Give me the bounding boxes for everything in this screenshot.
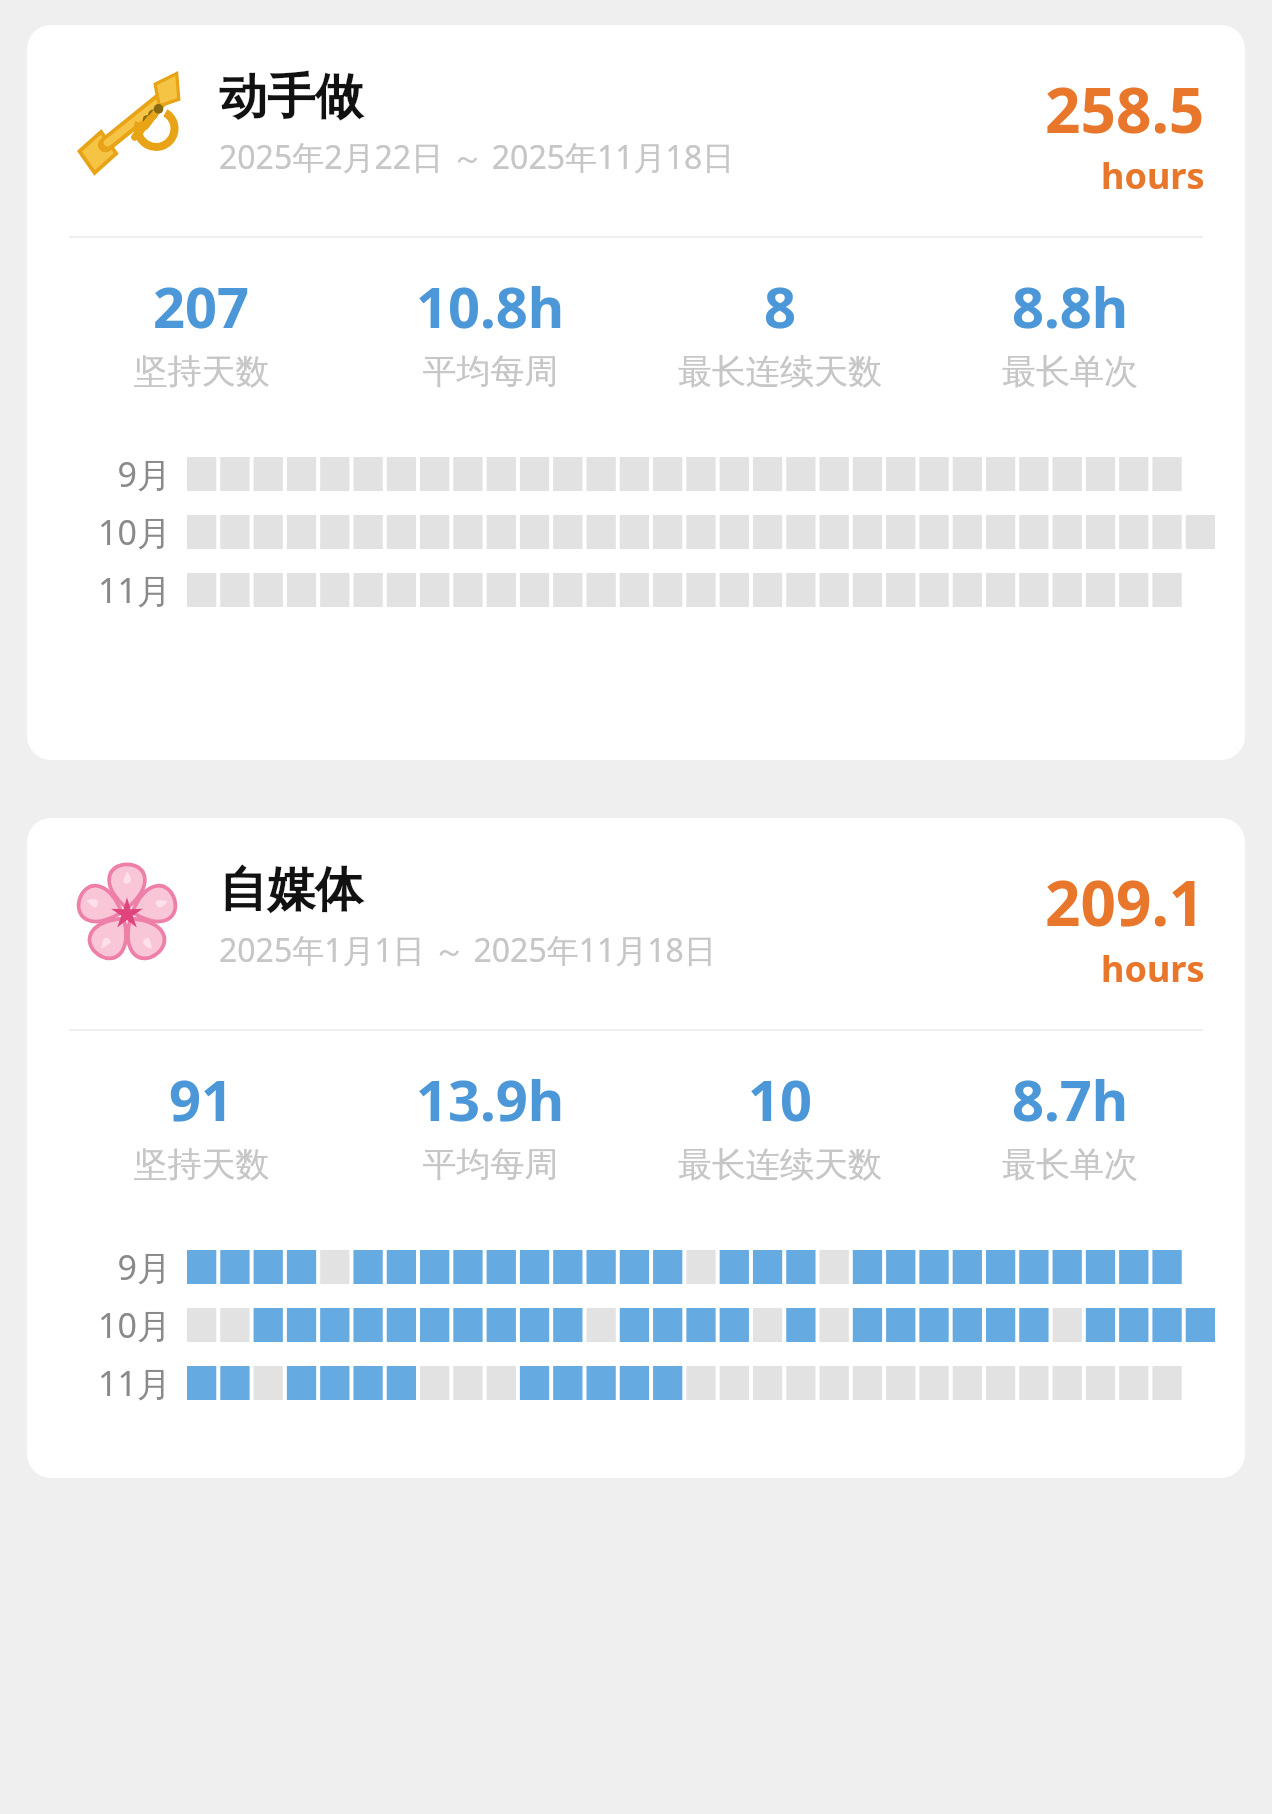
button[interactable]: 8.8h xyxy=(925,268,1215,393)
staticText: 2025年1月1日 ～ 2025年11月18日 xyxy=(219,928,716,972)
staticText: 9月 xyxy=(67,1244,171,1290)
staticText: 10 xyxy=(748,1061,813,1137)
button[interactable]: 8 xyxy=(635,268,925,393)
staticText: 11月 xyxy=(67,567,171,613)
staticText: 最长连续天数 xyxy=(635,1143,925,1186)
button[interactable]: Cherry blossom xyxy=(27,818,1245,1478)
other: Trumpet xyxy=(73,67,181,175)
staticText: 258.5 xyxy=(1045,67,1205,151)
staticText: hours xyxy=(1101,151,1205,200)
staticText: 10月 xyxy=(67,509,171,555)
button[interactable]: 13.9h xyxy=(346,1061,635,1186)
staticText: 9月 xyxy=(67,451,171,497)
staticText: 209.1 xyxy=(1045,860,1205,944)
staticText: 动手做 xyxy=(219,67,363,127)
staticText: 自媒体 xyxy=(219,860,363,920)
staticText: 最长单次 xyxy=(925,350,1215,393)
staticText: 最长单次 xyxy=(925,1143,1215,1186)
staticText: 8 xyxy=(764,268,797,344)
staticText: 10.8h xyxy=(416,268,565,344)
staticText: 坚持天数 xyxy=(57,350,346,393)
button[interactable]: 91 xyxy=(57,1061,346,1186)
button[interactable]: Trumpet xyxy=(27,25,1245,760)
staticText: 91 xyxy=(169,1061,234,1137)
staticText: hours xyxy=(1101,944,1205,993)
staticText: 最长连续天数 xyxy=(635,350,925,393)
button[interactable]: 10 xyxy=(635,1061,925,1186)
staticText: 坚持天数 xyxy=(57,1143,346,1186)
staticText: 平均每周 xyxy=(346,350,635,393)
staticText: 13.9h xyxy=(416,1061,565,1137)
staticText: 8.7h xyxy=(1012,1061,1129,1137)
button[interactable]: 8.7h xyxy=(925,1061,1215,1186)
button[interactable]: 207 xyxy=(57,268,346,393)
other: Cherry blossom xyxy=(73,860,181,968)
button[interactable]: 10.8h xyxy=(346,268,635,393)
staticText: 平均每周 xyxy=(346,1143,635,1186)
staticText: 11月 xyxy=(67,1360,171,1406)
staticText: 10月 xyxy=(67,1302,171,1348)
staticText: 8.8h xyxy=(1012,268,1129,344)
staticText: 207 xyxy=(153,268,250,344)
staticText: 2025年2月22日 ～ 2025年11月18日 xyxy=(219,135,735,179)
